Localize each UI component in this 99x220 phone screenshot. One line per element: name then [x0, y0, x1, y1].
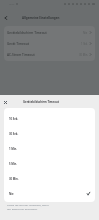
- staticText: Wähle die Zeit der Inaktivität, bevor: [7, 203, 49, 206]
- staticText: 30 Sek.: [9, 132, 19, 136]
- button[interactable]: 30 Min.: [4, 171, 95, 186]
- staticText: Gerät Timeout: [7, 42, 29, 46]
- staticText: Gerätebildschirm Timeout: [23, 100, 59, 104]
- button[interactable]: 30 Sek.: [4, 126, 95, 141]
- button[interactable]: 10 Sek.: [4, 111, 95, 126]
- staticText: AC-Strom Timeout: [7, 53, 35, 57]
- staticText: 1 Min.: [9, 147, 18, 151]
- button[interactable]: Gerätebildschirm Timeout: [4, 27, 95, 38]
- staticText: der Bildschirm abschaltet.: [7, 207, 38, 210]
- button[interactable]: Zurück: [0, 12, 11, 23]
- button[interactable]: Schließen: [0, 97, 10, 107]
- staticText: Allgemeine Einstellungen: [22, 16, 60, 20]
- staticText: 30 Min.: [9, 177, 19, 181]
- button[interactable]: 1 Min.: [4, 141, 95, 156]
- staticText: Nie: [9, 192, 14, 196]
- button[interactable]: 5 Min.: [4, 156, 95, 171]
- staticText: 5 Min.: [9, 162, 18, 166]
- staticText: Nie: [83, 31, 88, 35]
- button[interactable]: Gerät Timeout: [4, 38, 95, 49]
- button[interactable]: AC-Strom Timeout: [4, 49, 95, 60]
- staticText: 30 Min.: [79, 53, 88, 57]
- button[interactable]: Nie: [4, 186, 95, 201]
- staticText: 10 Sek.: [9, 117, 19, 121]
- staticText: 1 Std.: [81, 42, 88, 46]
- staticText: Gerätebildschirm Timeout: [7, 31, 47, 35]
